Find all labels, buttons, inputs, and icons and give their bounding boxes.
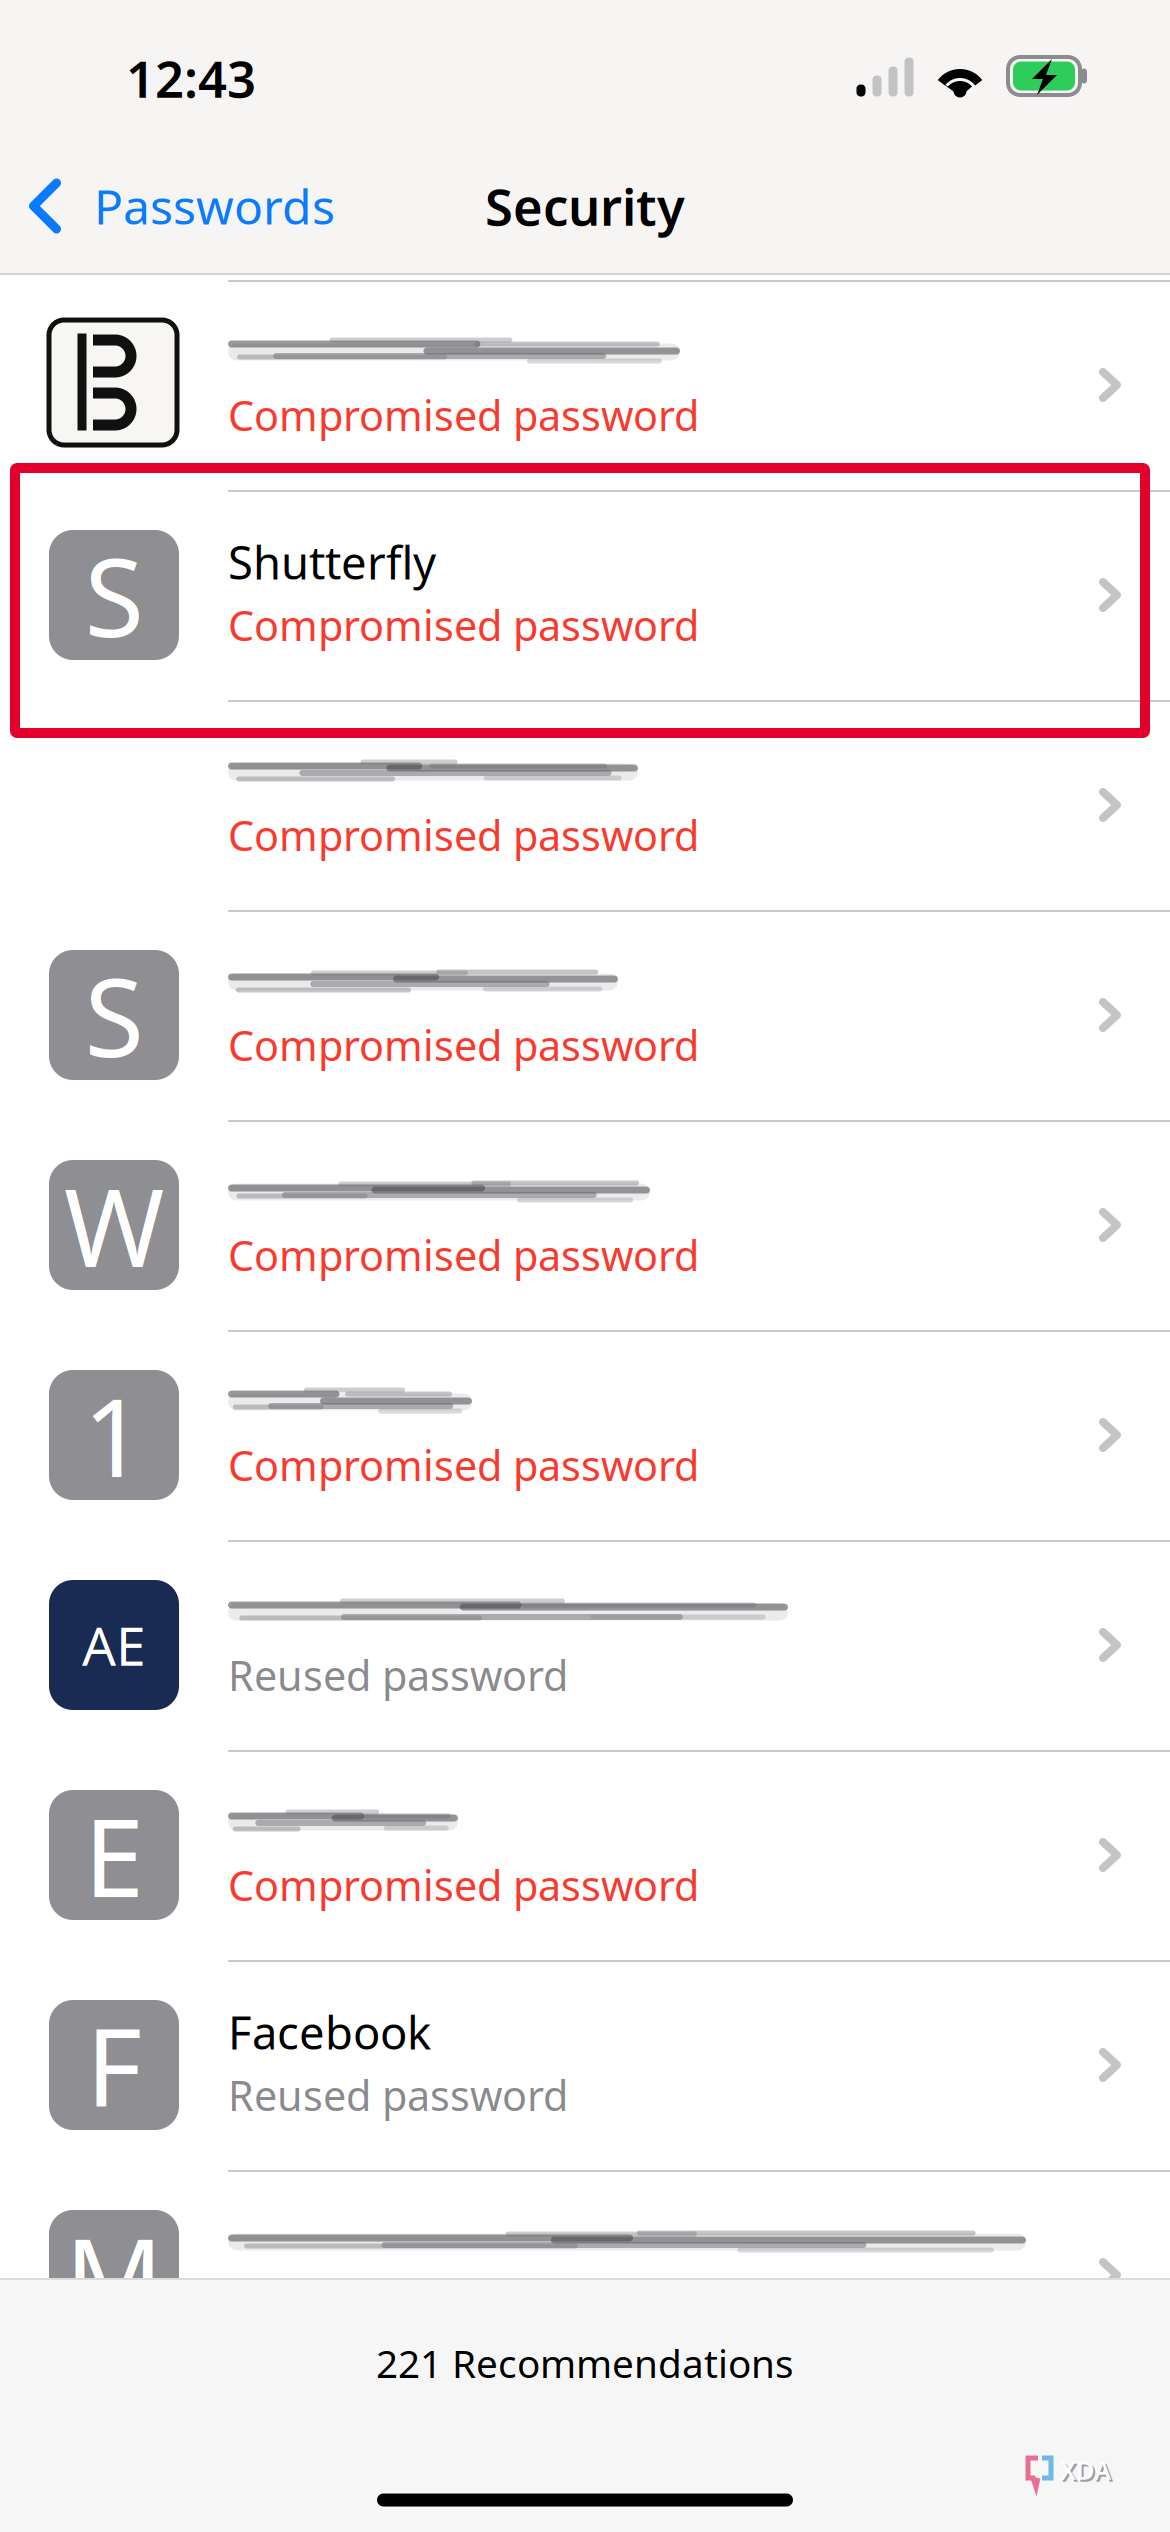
staticText: Facebook xyxy=(228,2002,431,2062)
staticText: 12:43 xyxy=(126,44,256,112)
staticText: Compromised password xyxy=(228,388,699,442)
staticText: Reused password xyxy=(228,2068,568,2122)
staticText: E xyxy=(84,1783,144,1927)
staticText: S xyxy=(84,523,143,667)
staticText: Reused password xyxy=(228,1648,568,1702)
button[interactable]: AE xyxy=(0,1540,1170,1750)
button[interactable]: Compromised password xyxy=(0,280,1170,490)
staticText: Compromised password xyxy=(228,1858,699,1912)
staticText: Compromised password xyxy=(228,2278,699,2332)
button[interactable]: Passwords xyxy=(26,156,426,256)
button[interactable]: S xyxy=(0,910,1170,1120)
staticText: W xyxy=(64,1153,164,1297)
button[interactable]: Compromised password xyxy=(0,700,1170,910)
staticText: F xyxy=(86,1993,142,2137)
staticText: Compromised password xyxy=(228,808,699,862)
staticText: 1 xyxy=(83,1363,145,1507)
staticText: 221 Recommendations xyxy=(376,2337,794,2389)
staticText: Compromised password xyxy=(228,1228,699,1282)
staticText: AE xyxy=(82,1610,146,1680)
button[interactable]: S xyxy=(0,490,1170,700)
staticText: S xyxy=(84,943,143,1087)
staticText: Passwords xyxy=(94,174,335,238)
staticText: Compromised password xyxy=(228,1018,699,1072)
button[interactable]: W xyxy=(0,1120,1170,1330)
button[interactable]: 1 xyxy=(0,1330,1170,1540)
staticText: Shutterfly xyxy=(228,532,436,592)
staticText: Compromised password xyxy=(228,1438,699,1492)
button[interactable]: M xyxy=(0,2170,1170,2380)
staticText: Security xyxy=(485,172,685,240)
button[interactable]: F xyxy=(0,1960,1170,2170)
staticText: M xyxy=(65,2203,163,2347)
staticText: XDA xyxy=(1062,2455,1113,2489)
staticText: Compromised password xyxy=(228,598,699,652)
staticText: XDA xyxy=(1060,2453,1111,2487)
button[interactable]: E xyxy=(0,1750,1170,1960)
